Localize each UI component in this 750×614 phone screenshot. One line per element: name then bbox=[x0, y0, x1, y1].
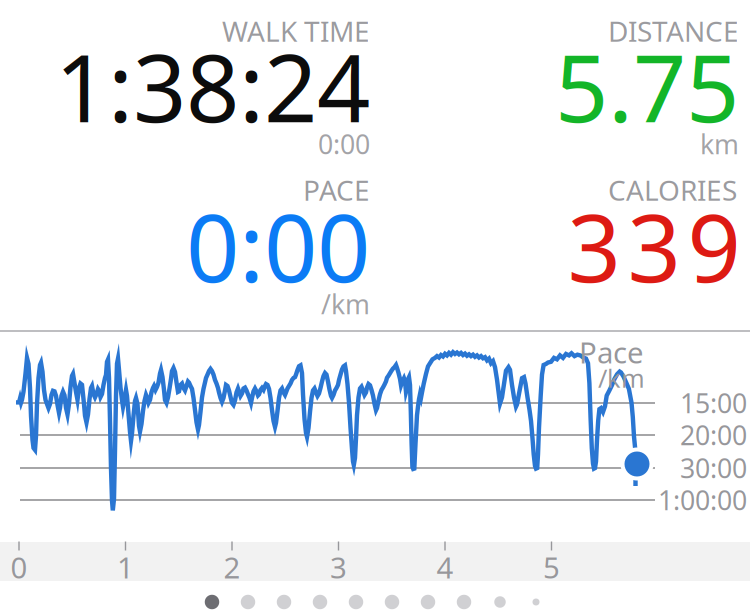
staticText: /km bbox=[598, 361, 645, 395]
staticText: 5 bbox=[543, 547, 560, 586]
staticText: PACE bbox=[303, 171, 370, 209]
staticText: 5.75 bbox=[555, 24, 739, 148]
staticText: /km bbox=[321, 286, 370, 322]
staticText: DISTANCE bbox=[608, 12, 739, 50]
staticText: 0:00 bbox=[318, 126, 370, 162]
staticText: CALORIES bbox=[608, 171, 737, 209]
staticText: 4 bbox=[436, 547, 453, 586]
staticText: 0 bbox=[10, 547, 27, 586]
staticText: 1:38:24 bbox=[55, 24, 370, 148]
staticText: 1:00:00 bbox=[658, 482, 747, 518]
staticText: 2 bbox=[223, 547, 240, 586]
staticText: 15:00 bbox=[680, 385, 747, 421]
staticText: 339 bbox=[567, 184, 740, 308]
staticText: 1 bbox=[117, 547, 134, 586]
staticText: 20:00 bbox=[680, 417, 747, 453]
staticText: 30:00 bbox=[680, 450, 747, 486]
staticText: WALK TIME bbox=[222, 12, 370, 50]
staticText: km bbox=[700, 126, 739, 162]
staticText: 0:00 bbox=[186, 184, 370, 308]
staticText: 3 bbox=[330, 547, 347, 586]
staticText: Pace bbox=[579, 332, 644, 371]
